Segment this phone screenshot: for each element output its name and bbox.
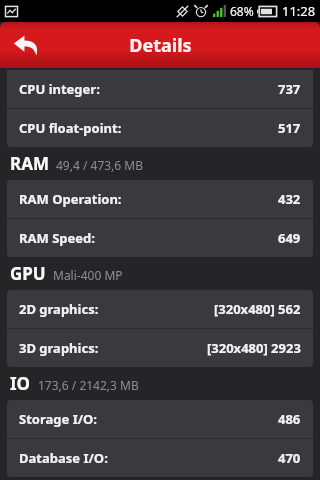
button[interactable]: Database I/O: — [7, 439, 313, 477]
button[interactable]: CPU float-point: — [7, 109, 313, 147]
staticText: Storage I/O: — [19, 410, 278, 428]
staticText: 173,6 / 2142,3 MB — [38, 377, 139, 393]
staticText: 3D graphics: — [19, 339, 207, 357]
staticText: GPU — [10, 262, 46, 285]
staticText: Details — [129, 33, 192, 58]
staticText: IO — [10, 372, 31, 395]
button[interactable]: Back — [4, 23, 48, 67]
staticText: 11:28 — [282, 2, 316, 20]
staticText: RAM Speed: — [19, 229, 278, 247]
staticText: 432 — [278, 190, 301, 208]
staticText: CPU float-point: — [19, 119, 278, 137]
staticText: 470 — [278, 449, 301, 467]
button[interactable]: RAM Operation: — [7, 180, 313, 218]
staticText: 649 — [278, 229, 301, 247]
staticText: 49,4 / 473,6 MB — [56, 157, 143, 173]
staticText: 517 — [278, 119, 301, 137]
staticText: 486 — [278, 410, 301, 428]
staticText: [320x480] 562 — [214, 300, 301, 318]
staticText: RAM — [10, 152, 49, 175]
staticText: CPU integer: — [19, 80, 278, 98]
button[interactable]: 2D graphics: — [7, 290, 313, 328]
button[interactable]: RAM Speed: — [7, 219, 313, 257]
staticText: RAM Operation: — [19, 190, 278, 208]
staticText: 737 — [278, 80, 301, 98]
staticText: Database I/O: — [19, 449, 278, 467]
staticText: 68% — [230, 3, 254, 19]
staticText: 2D graphics: — [19, 300, 214, 318]
staticText: [320x480] 2923 — [207, 339, 301, 357]
button[interactable]: Storage I/O: — [7, 400, 313, 438]
button[interactable]: 3D graphics: — [7, 329, 313, 367]
button[interactable]: CPU integer: — [7, 70, 313, 108]
staticText: Mali-400 MP — [53, 267, 123, 283]
